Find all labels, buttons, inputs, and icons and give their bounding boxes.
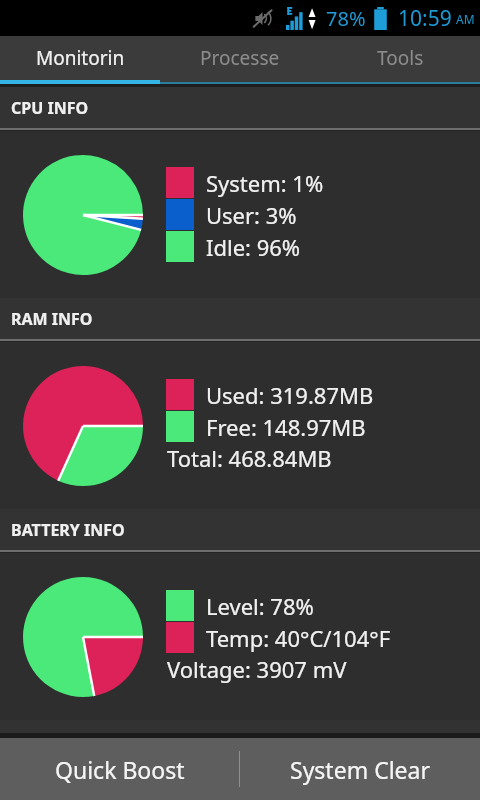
- staticText: Processe: [200, 45, 280, 71]
- button[interactable]: Monitorin: [0, 36, 160, 80]
- button[interactable]: System Clear: [240, 738, 480, 800]
- staticText: Used: 319.87MB: [206, 380, 374, 410]
- other: Battery 78 percent: [373, 7, 388, 30]
- staticText: System Clear: [290, 754, 430, 785]
- staticText: Total: 468.84MB: [167, 443, 332, 473]
- staticText: CPU INFO: [11, 97, 89, 119]
- staticText: 10:59: [398, 4, 452, 33]
- button[interactable]: Quick Boost: [0, 738, 239, 800]
- button[interactable]: Tools: [320, 36, 480, 80]
- staticText: BATTERY INFO: [11, 519, 125, 541]
- staticText: User: 3%: [206, 200, 297, 230]
- staticText: Temp: 40°C/104°F: [206, 623, 391, 653]
- staticText: System: 1%: [206, 168, 324, 198]
- staticText: 78%: [326, 5, 366, 32]
- staticText: Level: 78%: [206, 591, 314, 621]
- other: EDGE signal strength: [286, 7, 319, 30]
- button[interactable]: Used: 319.87MB: [0, 342, 480, 509]
- staticText: Idle: 96%: [206, 232, 301, 262]
- button[interactable]: Level: 78%: [0, 553, 480, 720]
- staticText: AM: [456, 11, 475, 27]
- staticText: Tools: [377, 45, 424, 71]
- staticText: Free: 148.97MB: [206, 412, 366, 442]
- button[interactable]: System: 1%: [0, 131, 480, 298]
- staticText: Voltage: 3907 mV: [167, 654, 347, 684]
- staticText: Monitorin: [36, 45, 125, 71]
- button[interactable]: Processe: [160, 36, 320, 80]
- staticText: RAM INFO: [11, 308, 93, 330]
- other: Sound muted: [252, 9, 273, 28]
- staticText: Quick Boost: [55, 754, 185, 785]
